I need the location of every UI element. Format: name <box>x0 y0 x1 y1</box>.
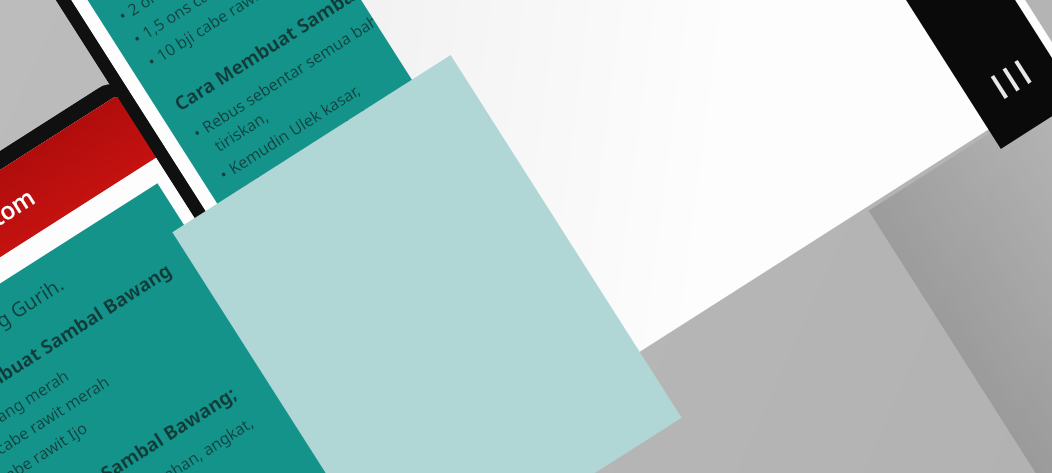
staticText: 1,5 ons cabe rawit merah <box>138 0 309 43</box>
staticText: 10 bji cabe rawit Ijo <box>0 416 91 473</box>
staticText: Cara Membuat Sambal Bawang; <box>169 0 437 117</box>
staticText: 2 ons bawang merah <box>123 0 269 21</box>
staticText: Bahan Membuat Sambal Bawang <box>0 257 177 447</box>
button[interactable]: Sambal Bawang Gurih. <box>44 0 547 223</box>
button[interactable]: Sambal Bawang Gurih. <box>0 183 337 473</box>
button[interactable]: Back <box>0 95 158 369</box>
staticText: • <box>114 2 135 27</box>
staticText: 1,5 ons cabe rawit merah <box>0 371 113 473</box>
staticText: • <box>189 119 210 144</box>
staticText: 10 bji cabe rawit Ijo <box>152 0 287 66</box>
staticText: Cara Membuat Sambal Bawang; <box>0 380 241 473</box>
staticText: Rebus sebentar semua bahan, angkat, tiri… <box>198 0 499 156</box>
staticText: • <box>143 48 164 72</box>
staticText: 2 ons bawang merah <box>0 364 73 468</box>
staticText: Rebus sebentar semua bahan, angkat, tiri… <box>2 395 295 473</box>
button[interactable]: Navigation bar <box>823 0 1052 149</box>
staticText: • <box>215 161 236 185</box>
staticText: Selanjutnya sambal goreng yang sudah diu… <box>239 7 519 188</box>
staticText: Halaman Kustom <box>0 180 41 314</box>
staticText: Sambal Bawang Gurih. <box>0 270 69 408</box>
staticText: • <box>229 183 242 194</box>
staticText: Kemudin Ulek kasar, <box>224 79 364 179</box>
staticText: • <box>128 25 150 49</box>
